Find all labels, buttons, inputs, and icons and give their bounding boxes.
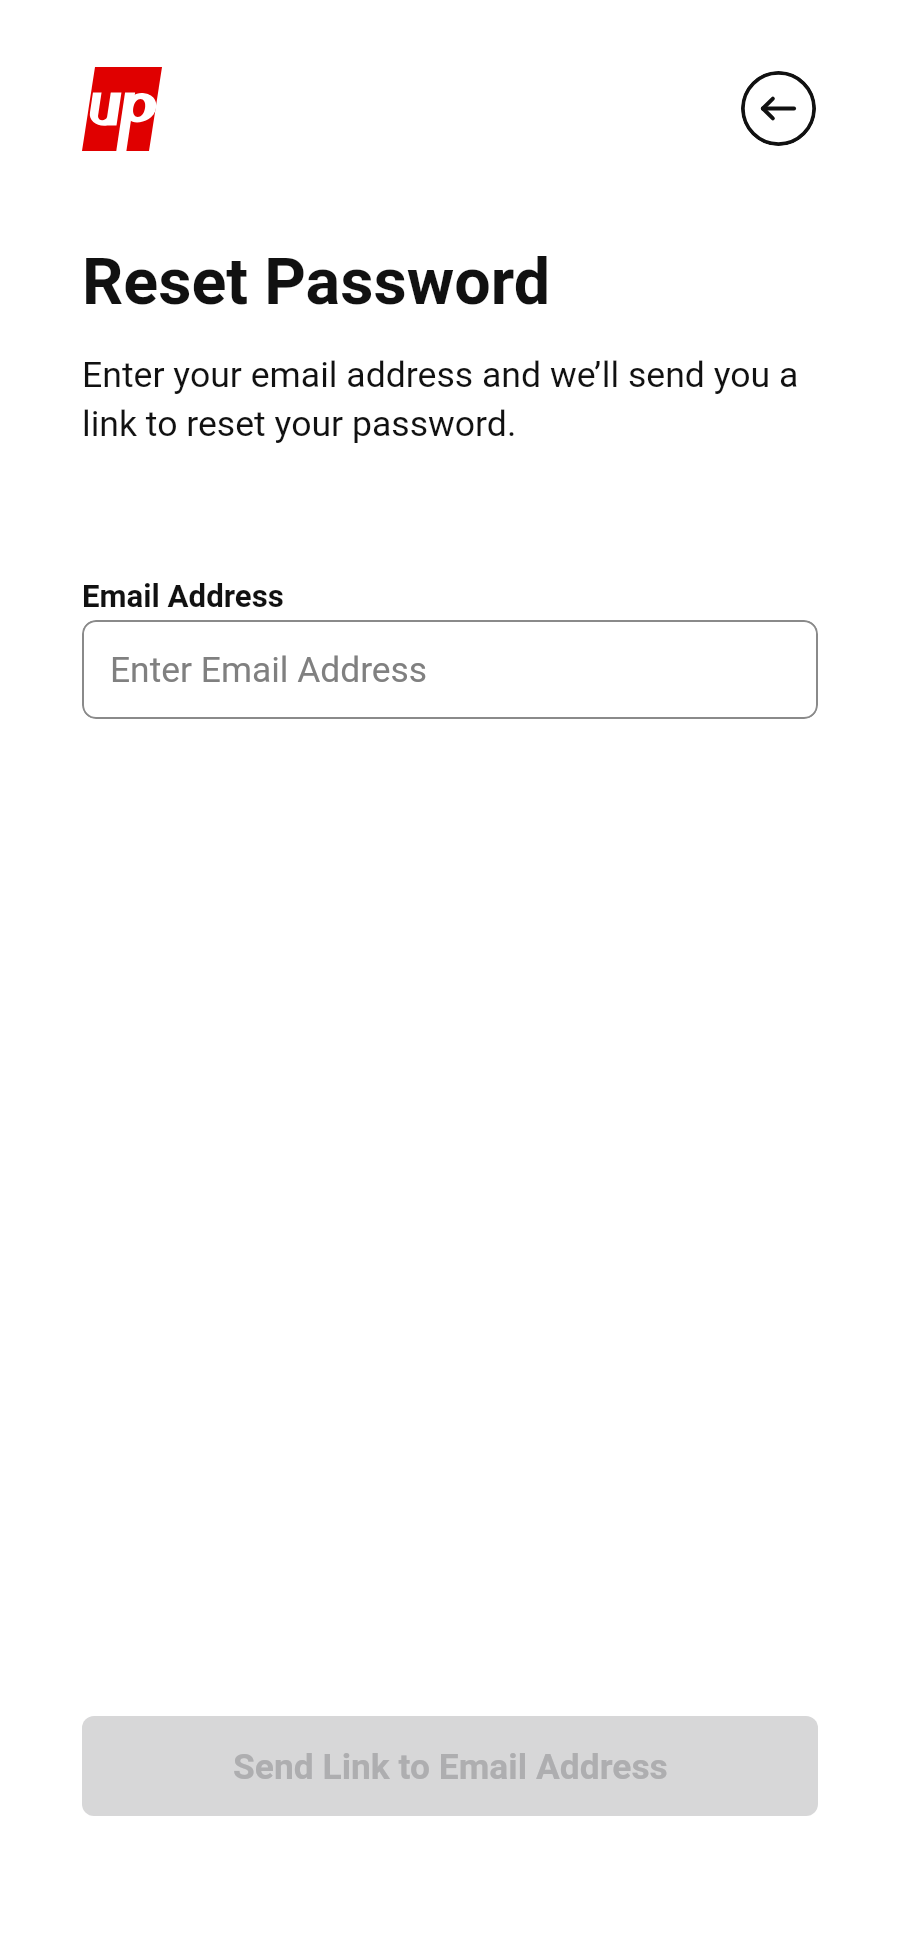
staticText: Enter your email address and we’ll send … — [82, 354, 830, 444]
staticText: Send Link to Email Address — [233, 1746, 668, 1787]
staticText: Reset Password — [82, 244, 551, 320]
button[interactable]: Back — [741, 71, 816, 146]
staticText: Email Address — [82, 578, 284, 615]
button[interactable]: Send Link to Email Address — [82, 1716, 818, 1816]
button[interactable]: Enter Email Address — [82, 620, 818, 719]
button[interactable]: up logo — [70, 58, 174, 162]
staticText: Enter Email Address — [110, 649, 428, 690]
